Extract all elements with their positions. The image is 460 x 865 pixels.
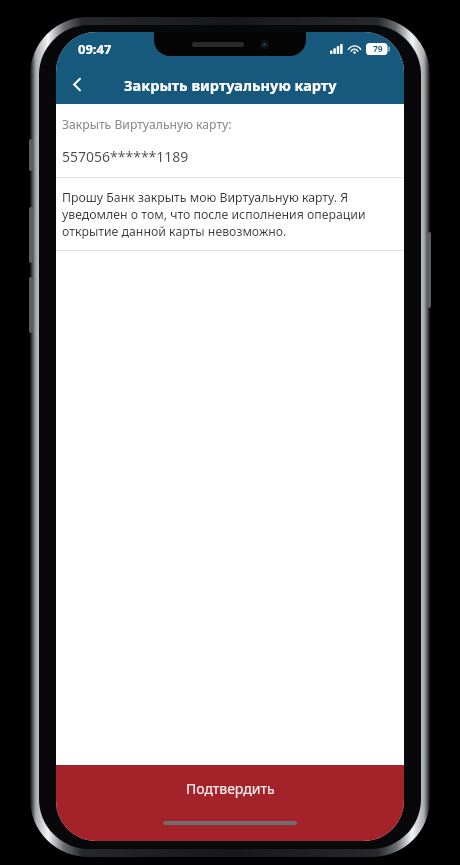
staticText: 09:47 — [78, 40, 112, 58]
button[interactable]: Подтвердить — [56, 765, 404, 841]
staticText: 79 — [373, 43, 383, 55]
staticText: Подтвердить — [186, 779, 275, 798]
button[interactable]: Назад — [56, 65, 98, 104]
staticText: Закрыть Виртуальную карту: — [62, 116, 232, 133]
staticText: 557056******1189 — [62, 147, 189, 166]
staticText: Закрыть виртуальную карту — [124, 75, 337, 95]
staticText: Прошу Банк закрыть мою Виртуальную карту… — [62, 189, 398, 240]
